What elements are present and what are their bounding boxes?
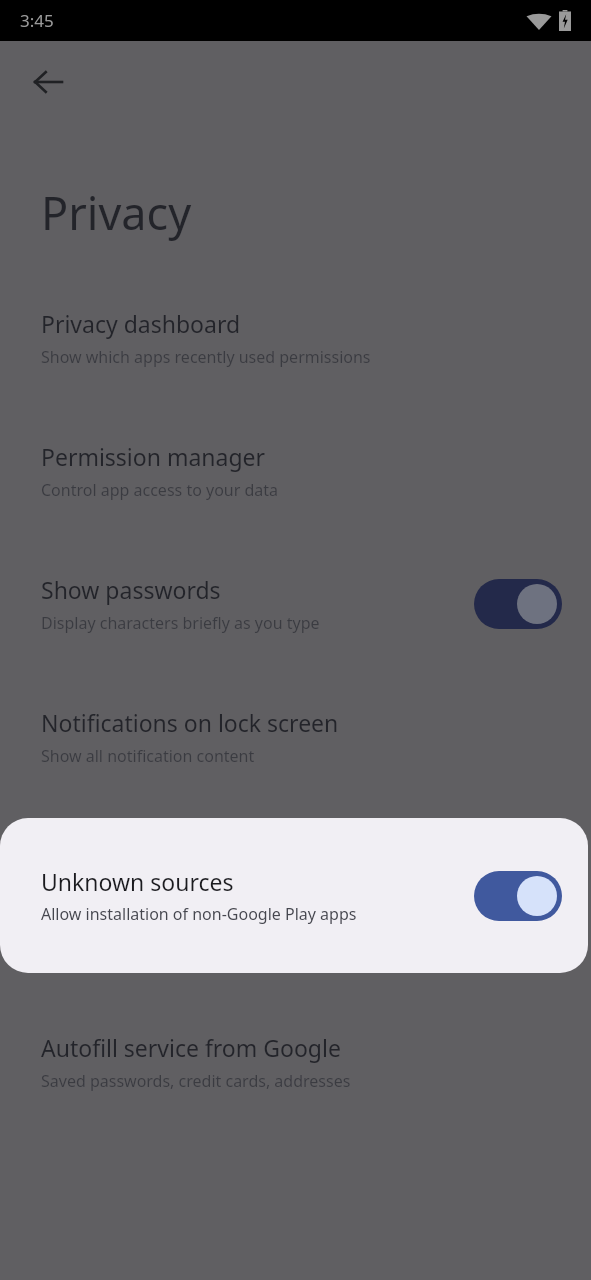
staticText: Saved passwords, credit cards, addresses — [41, 1070, 351, 1092]
staticText: 3:45 — [20, 9, 54, 32]
button[interactable]: Show passwords — [0, 537, 591, 670]
staticText: Show which apps recently used permission… — [41, 346, 371, 368]
button[interactable]: Unknown sources — [0, 818, 588, 973]
staticText: Control app access to your data — [41, 479, 279, 501]
staticText: Allow installation of non-Google Play ap… — [41, 903, 357, 925]
button[interactable]: Privacy dashboard — [0, 271, 591, 404]
staticText: Permission manager — [41, 441, 266, 472]
button[interactable]: Notifications on lock screen — [0, 670, 591, 803]
staticText: Show passwords — [41, 574, 221, 605]
staticText: Autofill service from Google — [41, 1032, 341, 1063]
staticText: Show all notification content — [41, 745, 255, 767]
staticText: Display characters briefly as you type — [41, 612, 320, 634]
button[interactable]: Permission manager — [0, 404, 591, 537]
staticText: Privacy dashboard — [41, 308, 241, 339]
staticText: Privacy — [41, 182, 192, 243]
staticText: Unknown sources — [41, 866, 234, 897]
staticText: Notifications on lock screen — [41, 707, 339, 738]
button[interactable]: Autofill service from Google — [0, 995, 591, 1128]
button[interactable]: Back — [0, 41, 96, 123]
